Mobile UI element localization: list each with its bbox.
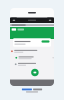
button[interactable] xyxy=(12,61,57,67)
button[interactable]: Back xyxy=(11,17,17,23)
button[interactable] xyxy=(10,48,60,54)
button[interactable] xyxy=(13,38,51,47)
button[interactable] xyxy=(13,54,57,61)
button[interactable]: Compose xyxy=(30,67,40,77)
button[interactable]: More xyxy=(47,17,53,23)
